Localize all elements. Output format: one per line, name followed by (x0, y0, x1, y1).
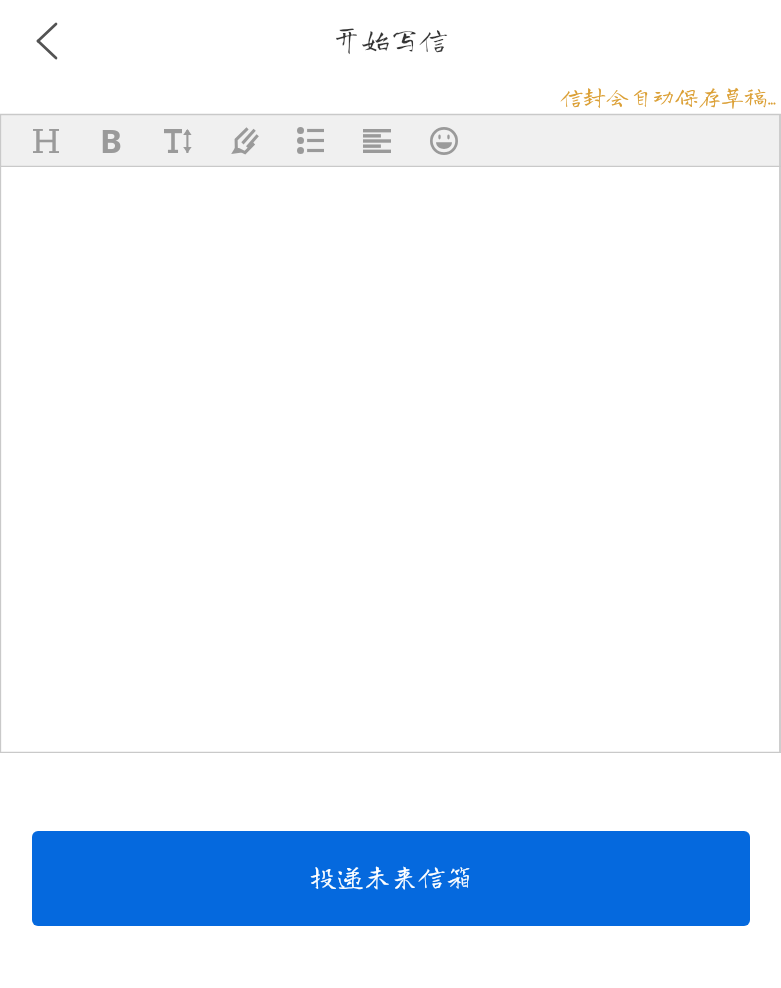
button[interactable] (0, 167, 781, 753)
staticText: B (100, 118, 122, 163)
staticText: 开始写信 (332, 24, 449, 53)
staticText: 投递未来信箱 (310, 862, 472, 889)
button[interactable]: Bulleted list (284, 114, 336, 167)
button[interactable]: 投递未来信箱 (32, 831, 750, 926)
button[interactable]: Heading (20, 114, 72, 167)
button[interactable]: Back (20, 15, 72, 67)
button[interactable]: Text size (152, 114, 204, 167)
button[interactable]: Emoji (418, 114, 470, 167)
button[interactable]: Pen (218, 114, 270, 167)
button[interactable]: Bold (85, 114, 137, 167)
staticText: 信封会自动保存草稿... (560, 85, 775, 108)
button[interactable]: Align left (351, 114, 403, 167)
